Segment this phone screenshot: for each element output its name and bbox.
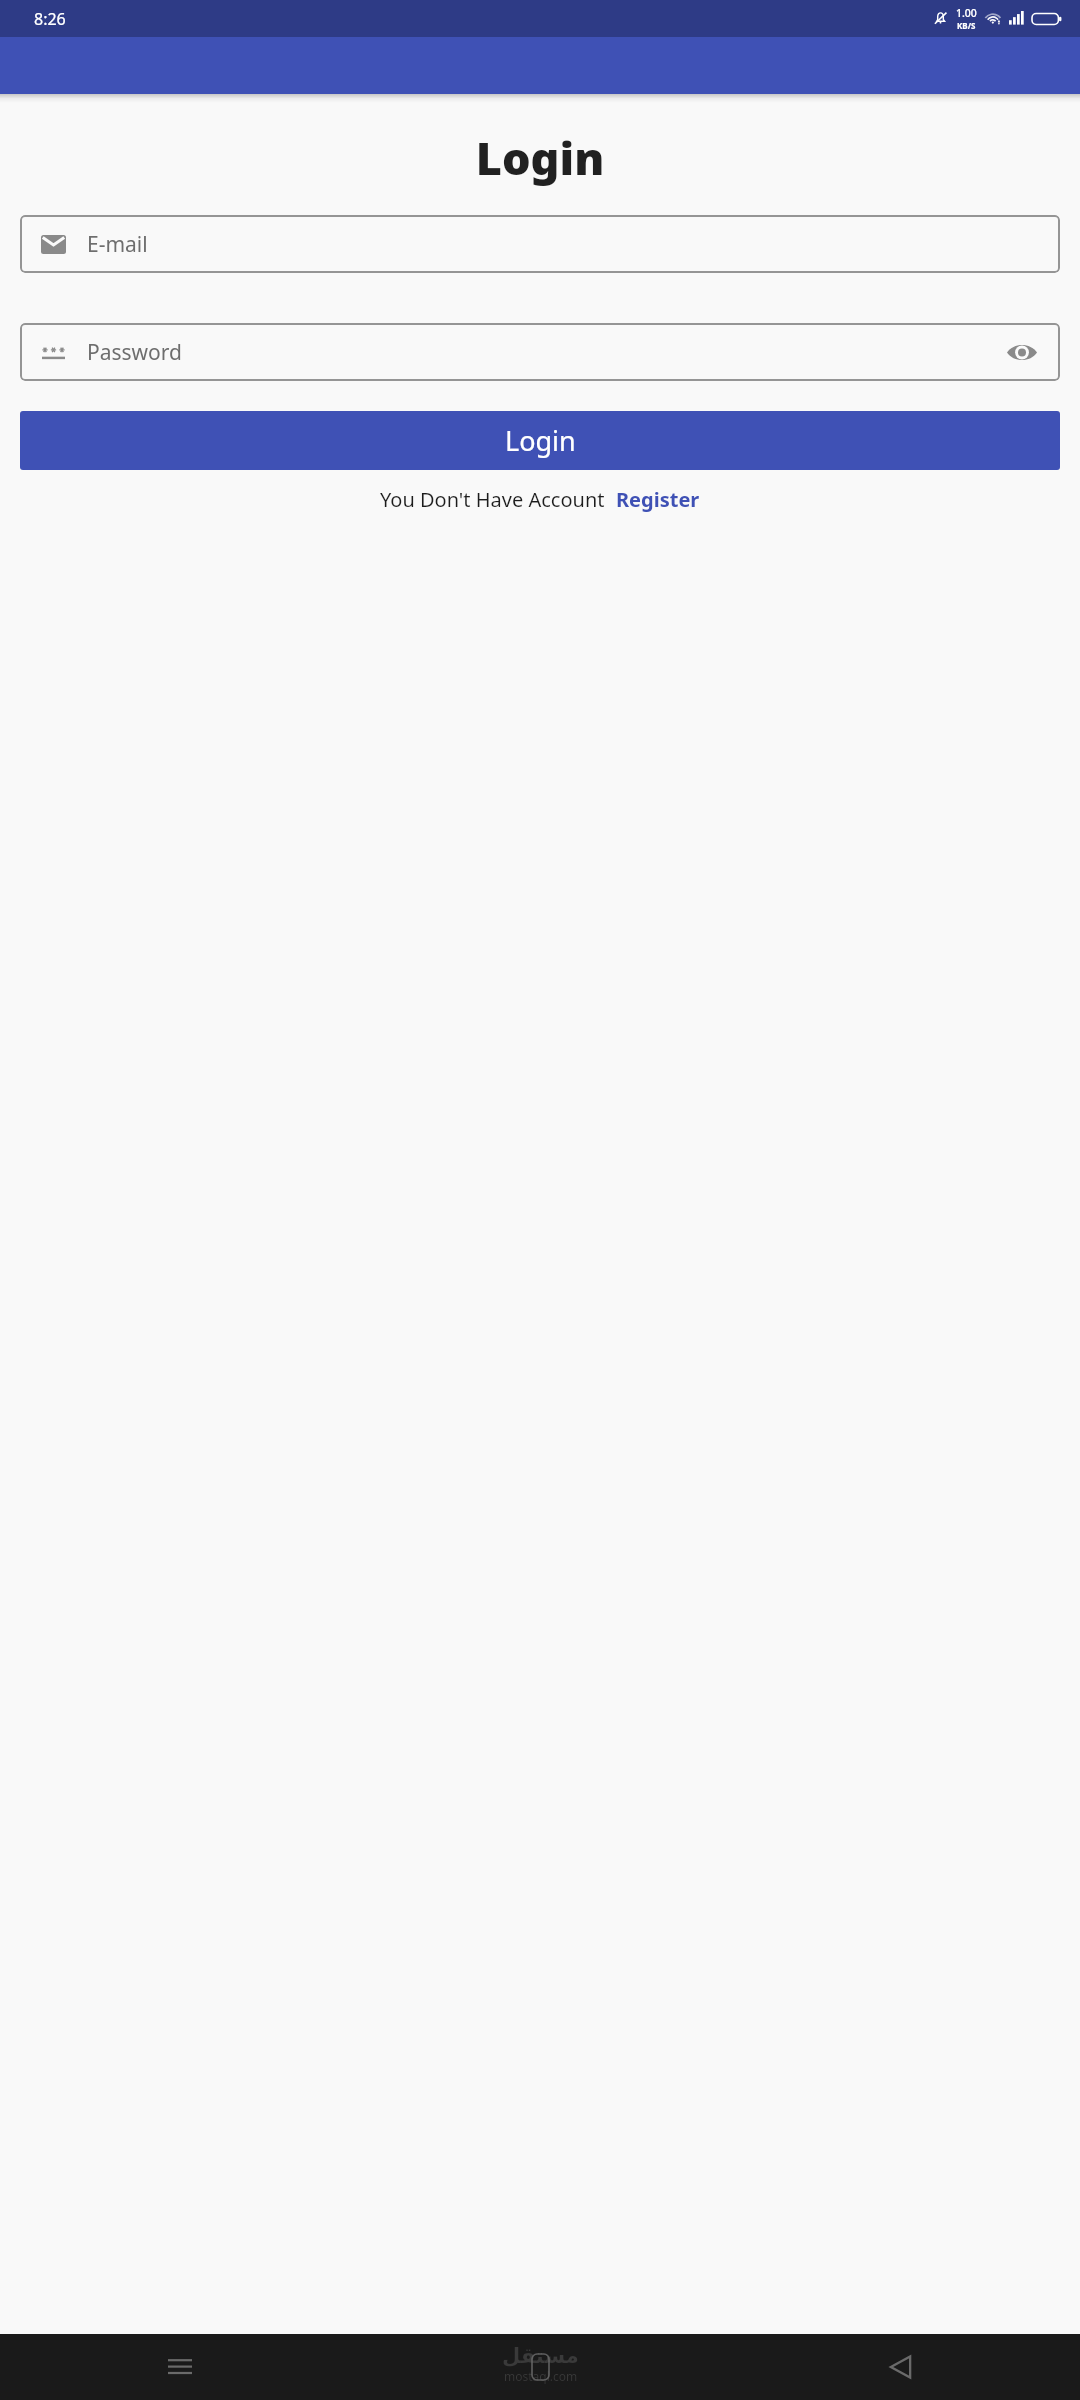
- staticText: You Don't Have Account: [380, 486, 605, 513]
- button[interactable]: Home: [360, 2334, 720, 2400]
- button[interactable]: Recent apps: [0, 2334, 360, 2400]
- staticText: 1.00: [956, 6, 977, 20]
- button[interactable]: Register: [616, 486, 700, 513]
- button[interactable]: Login: [20, 411, 1060, 470]
- staticText: Login: [505, 422, 576, 459]
- button[interactable]: Show password: [1005, 335, 1039, 369]
- staticText: Register: [616, 486, 700, 513]
- staticText: 8:26: [34, 8, 66, 30]
- staticText: Password: [87, 338, 1005, 367]
- staticText: Login: [0, 127, 1080, 188]
- button[interactable]: E-mail: [20, 215, 1060, 273]
- staticText: mostaql.com: [504, 2368, 578, 2384]
- staticText: KB/S: [957, 20, 976, 31]
- button[interactable]: Back: [720, 2334, 1080, 2400]
- button[interactable]: Password: [20, 323, 1060, 381]
- staticText: E-mail: [87, 230, 1039, 259]
- staticText: مستقل: [502, 2344, 579, 2368]
